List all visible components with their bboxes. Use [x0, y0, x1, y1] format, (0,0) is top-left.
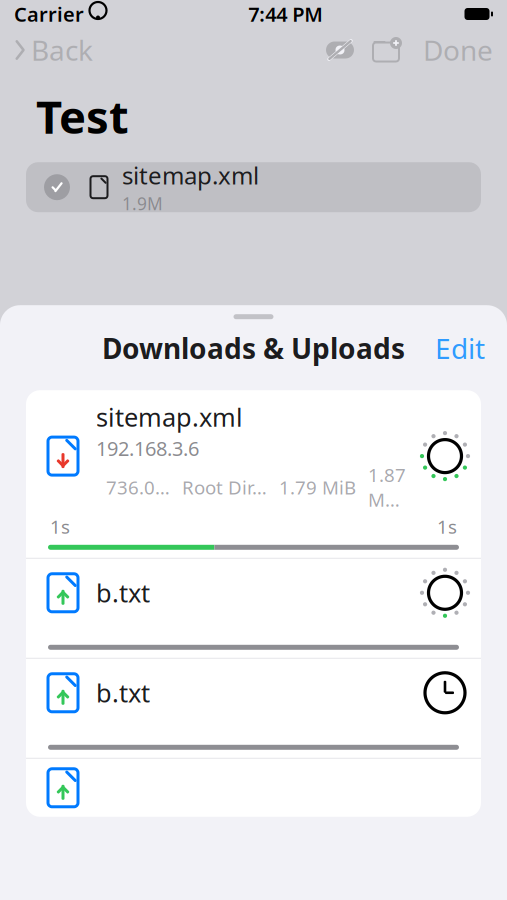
staticText: 1s: [50, 514, 70, 539]
button[interactable]: Back: [0, 28, 107, 72]
staticText: Test: [36, 86, 129, 146]
staticText: 1.87 M…: [368, 462, 406, 512]
button[interactable]: Show hidden files: [317, 28, 363, 72]
staticText: sitemap.xml: [96, 400, 243, 434]
staticText: 192.168.3.6: [96, 435, 199, 461]
staticText: 1.9M: [122, 192, 163, 215]
staticText: 1s: [437, 514, 457, 539]
staticText: Edit: [435, 330, 485, 367]
staticText: b.txt: [96, 576, 150, 610]
button[interactable]: Edit: [413, 331, 507, 365]
button[interactable]: b.txt: [26, 559, 481, 658]
button[interactable]: New folder: [363, 28, 409, 72]
staticText: 1.79 MiB: [279, 475, 356, 500]
staticText: Back: [31, 31, 93, 69]
staticText: 736.0…: [106, 475, 170, 500]
staticText: Carrier: [14, 1, 84, 27]
button[interactable]: b.txt: [26, 659, 481, 758]
button[interactable]: sitemap.xml: [26, 162, 481, 212]
staticText: Downloads & Uploads: [102, 330, 405, 367]
staticText: b.txt: [96, 676, 150, 710]
staticText: 7:44 PM: [248, 1, 323, 27]
staticText: Done: [423, 31, 493, 69]
staticText: Root Dir…: [182, 475, 267, 500]
staticText: sitemap.xml: [122, 159, 259, 191]
button[interactable]: sitemap.xml: [26, 390, 481, 558]
button[interactable]: Done: [409, 28, 507, 72]
